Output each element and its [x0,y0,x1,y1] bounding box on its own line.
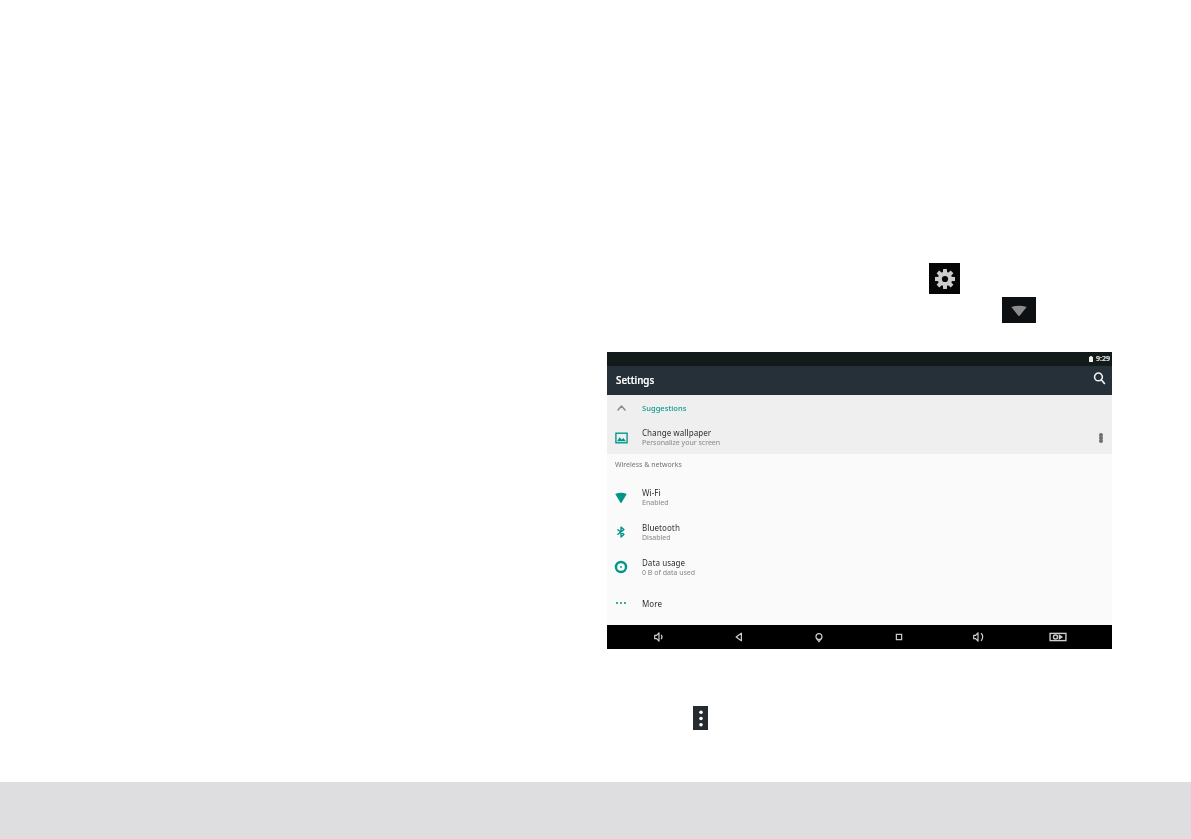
staticText: Data usage [642,557,686,568]
button[interactable]: Recents [887,625,911,649]
button[interactable]: Change wallpaper [607,421,1112,454]
staticText: Personalize your screen [642,438,721,448]
staticText: Wi-Fi [642,487,661,498]
button[interactable]: More [607,592,1112,614]
staticText: Enabled [642,498,669,508]
button[interactable]: Back [727,625,751,649]
button[interactable]: Data usage [607,552,1112,582]
button[interactable]: Bluetooth [607,517,1112,547]
button[interactable]: Screenshot [1046,625,1070,649]
button[interactable]: Settings [929,263,960,294]
staticText: Change wallpaper [642,427,712,438]
staticText: More [642,598,663,609]
staticText: Suggestions [642,403,687,413]
button[interactable]: More options [1091,428,1111,448]
button[interactable]: Wi-Fi [1002,297,1036,323]
staticText: Disabled [642,533,671,543]
button[interactable]: Search [1090,369,1108,387]
button[interactable]: Home [807,625,831,649]
button[interactable]: Suggestions [607,395,1112,421]
staticText: Wireless & networks [615,460,682,470]
button[interactable]: Wi-Fi [607,482,1112,512]
staticText: 0 B of data used [642,568,696,578]
button[interactable]: Volume up [966,625,990,649]
staticText: 9:29 [1096,354,1110,364]
button[interactable]: Volume down [647,625,671,649]
button[interactable]: More options [693,706,708,730]
staticText: Settings [616,374,655,387]
staticText: Bluetooth [642,522,680,533]
